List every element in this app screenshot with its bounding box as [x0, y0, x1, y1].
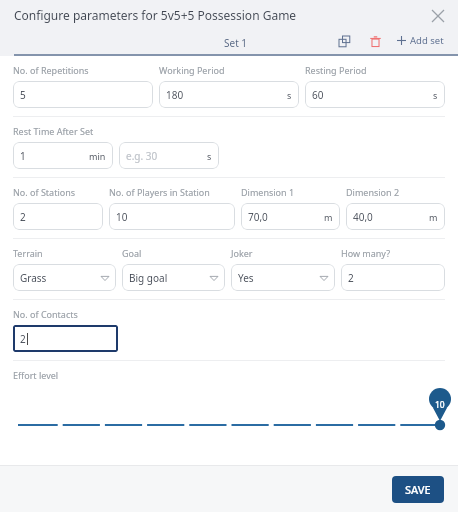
staticText: 10 [116, 210, 128, 224]
staticText: 2 [348, 271, 354, 285]
staticText: Joker [231, 247, 335, 259]
button[interactable]: 70,0 [241, 203, 340, 230]
staticText: 2 [20, 332, 26, 346]
staticText: Terrain [13, 247, 116, 259]
staticText: m [324, 211, 333, 223]
button[interactable]: 2 [341, 264, 445, 291]
staticText: Rest Time After Set [13, 125, 94, 137]
button[interactable]: Duplicate set [333, 30, 355, 52]
button[interactable]: Delete set [364, 30, 386, 52]
staticText: No. of Repetitions [13, 64, 153, 76]
staticText: How many? [341, 247, 445, 259]
staticText: min [89, 150, 106, 162]
staticText: Add set [410, 34, 444, 47]
button[interactable]: 5 [13, 81, 153, 108]
staticText: Big goal [129, 271, 168, 285]
button[interactable]: e.g. 30 [119, 142, 219, 169]
button[interactable]: 2 [13, 203, 103, 230]
staticText: 40,0 [353, 210, 373, 224]
button[interactable]: Grass [13, 264, 116, 291]
staticText: 180 [166, 88, 184, 102]
staticText: Working Period [159, 64, 299, 76]
staticText: 60 [312, 88, 324, 102]
staticText: 5 [20, 88, 26, 102]
button[interactable]: Add set [393, 29, 448, 52]
staticText: 10 [435, 399, 445, 411]
staticText: No. of Stations [13, 186, 103, 198]
button[interactable]: 1 [13, 142, 113, 169]
button[interactable]: Close [427, 5, 449, 27]
button[interactable]: 10 [109, 203, 235, 230]
staticText: Effort level [13, 369, 59, 381]
button[interactable]: 40,0 [346, 203, 445, 230]
staticText: Set 1 [224, 36, 248, 50]
button[interactable]: 180 [159, 81, 299, 108]
button[interactable]: Yes [231, 264, 335, 291]
staticText: Grass [20, 271, 47, 285]
staticText: 70,0 [248, 210, 268, 224]
staticText: No. of Contacts [13, 308, 78, 320]
staticText: m [429, 211, 438, 223]
staticText: Resting Period [305, 64, 445, 76]
staticText: Goal [122, 247, 225, 259]
button[interactable]: 60 [305, 81, 445, 108]
staticText: e.g. 30 [126, 149, 158, 163]
staticText: 2 [20, 210, 26, 224]
button[interactable]: 2 [13, 325, 118, 352]
staticText: s [433, 89, 438, 101]
staticText: No. of Players in Station [109, 186, 235, 198]
staticText: s [287, 89, 292, 101]
staticText: Dimension 1 [241, 186, 340, 198]
button[interactable]: Set 1 [14, 32, 458, 56]
staticText: Yes [238, 271, 254, 285]
staticText: 1 [20, 149, 26, 163]
button[interactable]: SAVE [392, 476, 444, 503]
staticText: SAVE [405, 482, 431, 497]
staticText: s [207, 150, 212, 162]
staticText: Dimension 2 [346, 186, 445, 198]
button[interactable]: Big goal [122, 264, 225, 291]
staticText: Configure parameters for 5v5+5 Possessio… [14, 7, 297, 23]
